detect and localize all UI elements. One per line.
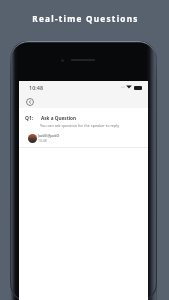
staticText: Q1: xyxy=(25,115,34,122)
staticText: 10:48 xyxy=(38,138,47,143)
staticText: Jack0(@jack0) xyxy=(38,133,60,137)
button[interactable]: Back xyxy=(26,98,34,106)
staticText: Real-time Questions xyxy=(1,13,169,24)
staticText: 10:48 xyxy=(29,84,44,91)
staticText: You can ask question for the speaker to … xyxy=(40,123,120,128)
staticText: Ask a Question xyxy=(41,115,77,121)
